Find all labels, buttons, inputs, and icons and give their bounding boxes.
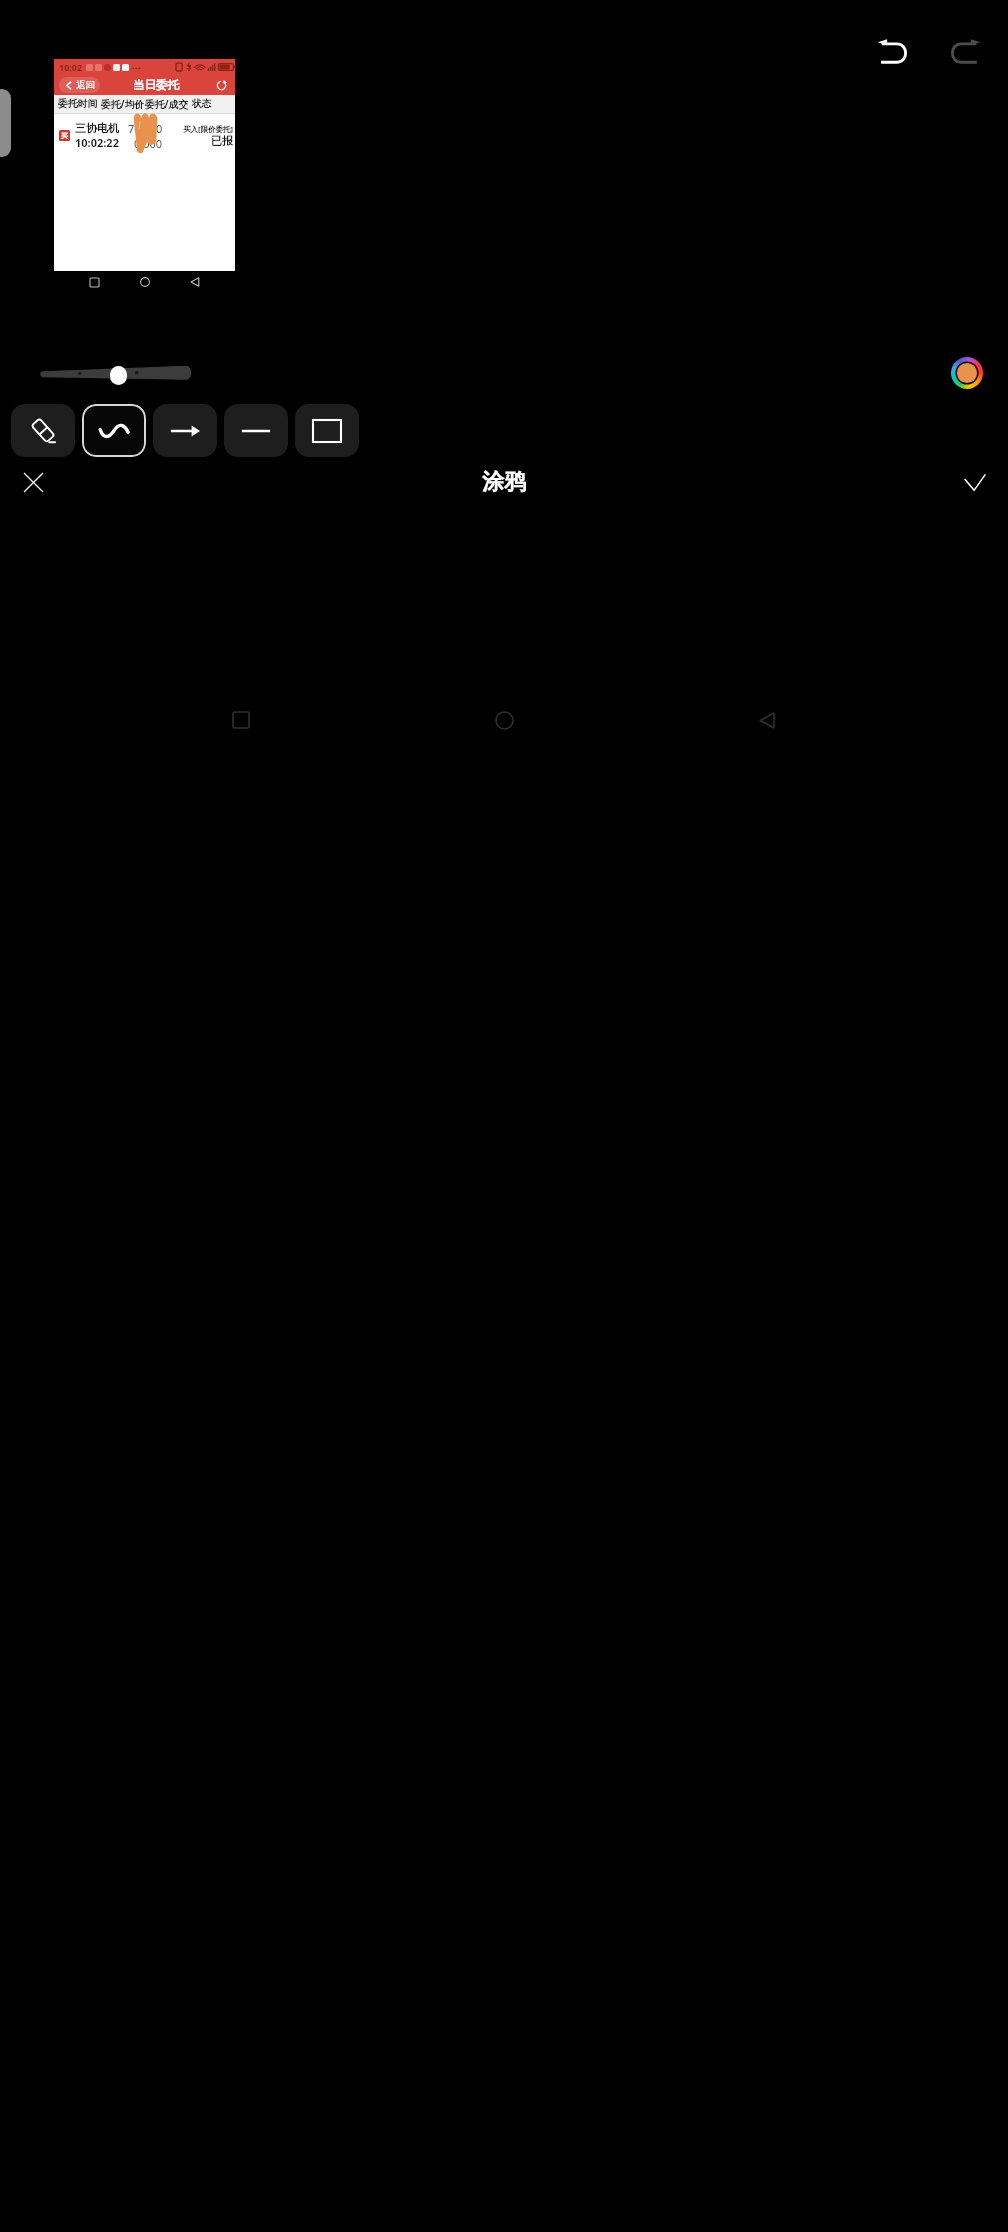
button[interactable]: Recents <box>84 272 104 292</box>
button[interactable]: Rectangle <box>295 404 359 457</box>
button[interactable]: Back <box>745 698 789 742</box>
staticText: 70.000 <box>128 121 163 136</box>
button[interactable]: Recents <box>219 698 263 742</box>
staticText: 三协电机 <box>75 121 119 135</box>
button[interactable] <box>43 358 193 388</box>
staticText: 买入[限价委托] <box>183 124 233 134</box>
button[interactable]: Eraser <box>11 404 75 457</box>
staticText: 状态 <box>192 98 212 110</box>
button[interactable]: Home <box>482 698 526 742</box>
button[interactable]: Undo <box>864 22 924 82</box>
button[interactable]: Color picker <box>947 353 987 393</box>
staticText: 委托/均价 <box>101 98 145 111</box>
staticText: 当日委托 <box>133 78 179 92</box>
button[interactable]: Back <box>185 272 205 292</box>
staticText: 委托时间 <box>58 98 98 110</box>
button[interactable]: Arrow <box>153 404 217 457</box>
button[interactable]: Refresh <box>213 77 229 93</box>
staticText: 涂鸦 <box>482 468 526 496</box>
button[interactable]: Stroke width <box>110 366 127 385</box>
button[interactable]: Redo <box>934 22 994 82</box>
button[interactable]: Line <box>224 404 288 457</box>
staticText: 买 <box>61 131 68 140</box>
button[interactable]: Freehand <box>82 404 146 457</box>
button[interactable]: 返回 <box>59 77 100 93</box>
button[interactable]: 买 <box>54 114 235 271</box>
button[interactable]: Done <box>950 457 1000 507</box>
button[interactable]: Cancel <box>8 457 58 507</box>
staticText: 0.000 <box>134 136 163 151</box>
staticText: 委托/成交 <box>145 98 189 111</box>
staticText: 10:02 <box>59 61 83 73</box>
button[interactable]: Home <box>135 272 155 292</box>
staticText: 已报 <box>211 134 233 148</box>
staticText: 10:02:22 <box>75 135 119 150</box>
staticText: 返回 <box>76 79 95 91</box>
